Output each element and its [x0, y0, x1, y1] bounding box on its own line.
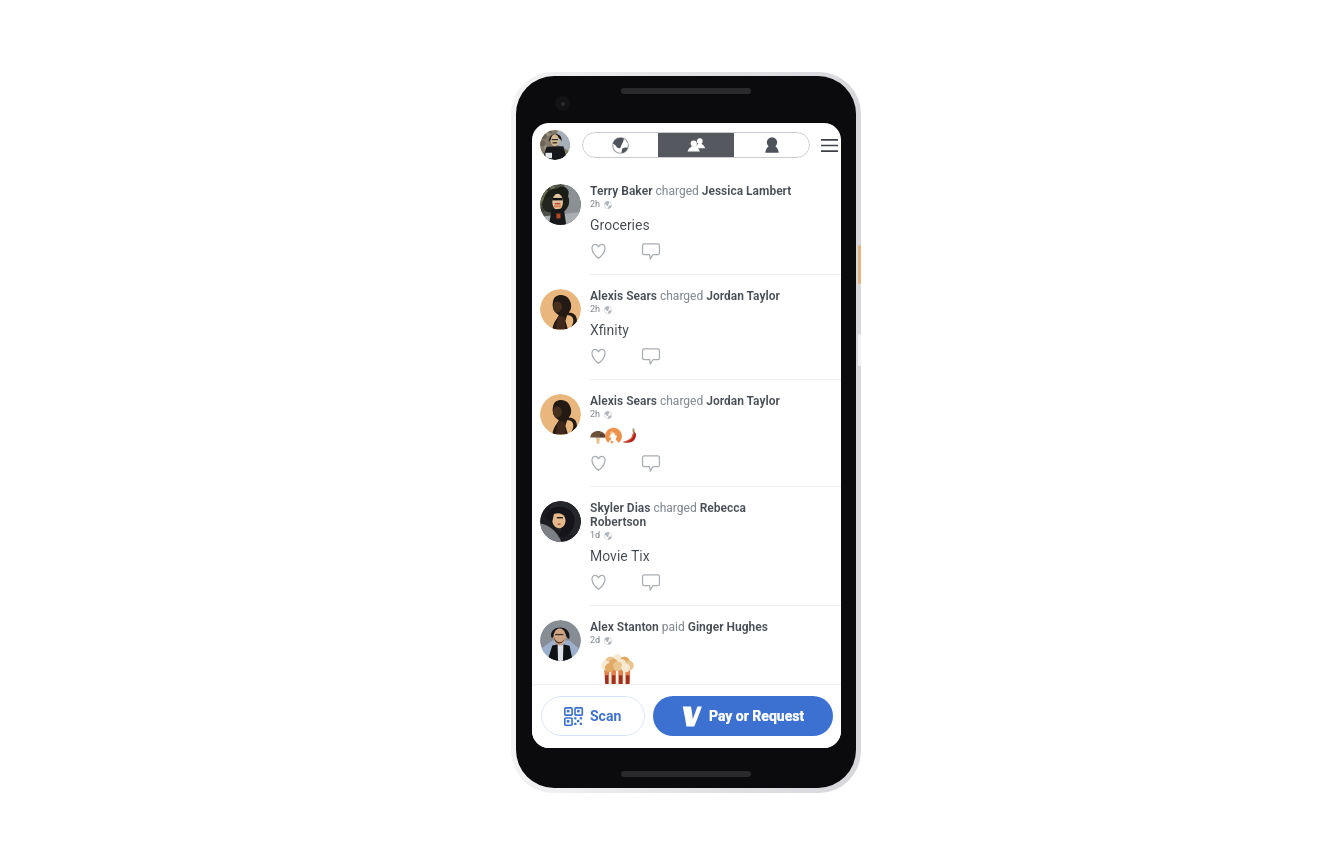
- button[interactable]: Like: [590, 348, 607, 364]
- staticText: 2h: [590, 409, 601, 420]
- button[interactable]: Alex Stanton paid Ginger Hughes: [532, 606, 841, 684]
- staticText: Alexis Sears charged Jordan Taylor: [590, 289, 780, 303]
- staticText: 1d: [590, 530, 601, 541]
- button[interactable]: Alexis Sears charged Jordan Taylor: [532, 275, 841, 380]
- button[interactable]: Like: [590, 455, 607, 471]
- staticText: 2d: [590, 635, 601, 646]
- button[interactable]: Like: [590, 574, 607, 590]
- staticText: Scan: [590, 708, 622, 724]
- button[interactable]: Pay or Request: [653, 696, 833, 736]
- button[interactable]: Comment: [642, 574, 660, 590]
- staticText: Alex Stanton paid Ginger Hughes: [590, 620, 768, 634]
- staticText: Pay or Request: [709, 708, 805, 724]
- button[interactable]: Skyler Dias charged Rebecca Robertson: [532, 487, 841, 606]
- staticText: 2h: [590, 199, 601, 210]
- button[interactable]: Scan: [541, 696, 645, 736]
- button[interactable]: Comment: [642, 455, 660, 471]
- staticText: Skyler Dias charged Rebecca Robertson: [590, 501, 796, 529]
- button[interactable]: Feed tab: [582, 132, 658, 158]
- button[interactable]: Comment: [642, 348, 660, 364]
- button[interactable]: Comment: [642, 243, 660, 259]
- staticText: Alexis Sears charged Jordan Taylor: [590, 394, 780, 408]
- button[interactable]: Like: [590, 243, 607, 259]
- button[interactable]: Friends feed: [658, 132, 734, 158]
- button[interactable]: Profile: [540, 130, 570, 160]
- staticText: 2h: [590, 304, 601, 315]
- staticText: Xfinity: [590, 322, 629, 338]
- button[interactable]: Terry Baker charged Jessica Lambert: [532, 170, 841, 275]
- staticText: Movie Tix: [590, 548, 650, 564]
- button[interactable]: Feed tab: [734, 132, 810, 158]
- staticText: Terry Baker charged Jessica Lambert: [590, 184, 792, 198]
- staticText: Groceries: [590, 217, 650, 233]
- button[interactable]: Alexis Sears charged Jordan Taylor: [532, 380, 841, 487]
- button[interactable]: Menu: [817, 133, 841, 157]
